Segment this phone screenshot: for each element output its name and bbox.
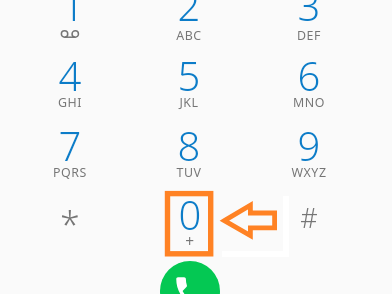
staticText: 1 [3,0,143,42]
button[interactable]: 8 TUV [130,110,249,180]
button[interactable]: 2 ABC [130,0,249,39]
button[interactable]: 5 JKL [130,40,249,110]
staticText: 3 [239,0,379,42]
staticText: # [239,199,379,263]
staticText: 7 [0,118,140,182]
staticText: PQRS [0,164,140,184]
staticText: + [120,230,260,250]
button[interactable]: Call [160,261,220,294]
staticText: 9 [239,118,379,182]
staticText: WXYZ [239,164,379,184]
button[interactable]: 6 MNO [250,40,369,110]
staticText: 5 [119,48,259,112]
staticText: 8 [119,118,259,182]
staticText: ABC [119,27,259,47]
button[interactable]: 1 [11,0,130,39]
staticText: 2 [119,0,259,42]
staticText: MNO [239,94,379,114]
staticText: TUV [119,164,259,184]
button[interactable]: 4 GHI [11,40,130,110]
button[interactable]: 3 DEF [250,0,369,39]
staticText: 4 [0,48,140,112]
staticText: 6 [239,48,379,112]
button[interactable]: # [250,182,369,252]
staticText: GHI [0,94,140,114]
button[interactable]: * [11,182,130,252]
button[interactable]: 0 + [130,180,249,250]
staticText: 0 [120,187,260,251]
staticText: JKL [119,94,259,114]
staticText: DEF [239,27,379,47]
button[interactable]: 7 PQRS [11,110,130,180]
staticText: * [0,200,140,264]
other: Voicemail [61,30,79,39]
button[interactable]: 9 WXYZ [250,110,369,180]
